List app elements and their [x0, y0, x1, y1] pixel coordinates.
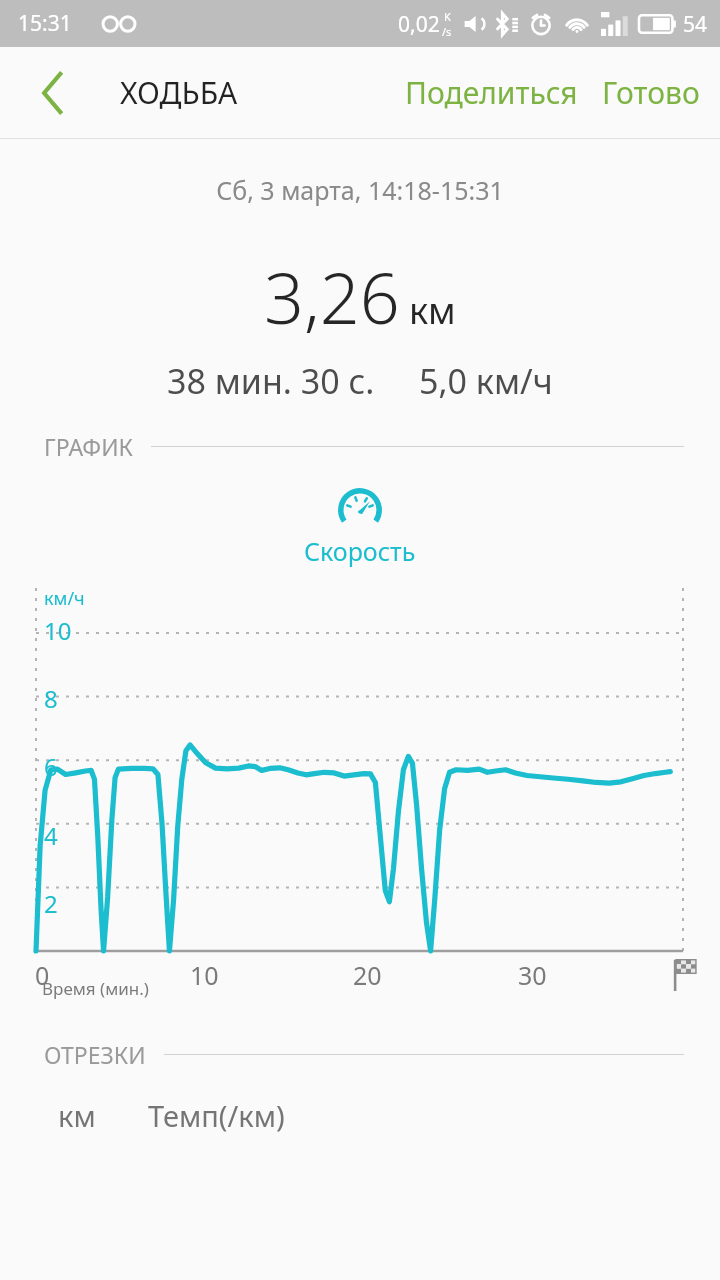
staticText: Темп(/км) — [148, 1096, 285, 1135]
staticText: 10 — [190, 958, 219, 992]
staticText: 0 — [35, 958, 50, 992]
staticText: 4 — [44, 819, 58, 852]
other: Скорость — [336, 484, 384, 526]
staticText: 30 — [518, 958, 547, 992]
staticText: 15:31 — [18, 9, 72, 38]
staticText: 0,02 — [398, 10, 440, 39]
staticText: ГРАФИК — [44, 431, 133, 462]
button[interactable]: Назад — [22, 62, 84, 124]
staticText: Время (мин.) — [42, 977, 149, 1000]
staticText: 10 — [44, 614, 72, 647]
staticText: 38 мин. 30 с. — [167, 358, 375, 404]
staticText: /s — [442, 24, 452, 39]
staticText: ОТРЕЗКИ — [44, 1039, 146, 1070]
staticText: 8 — [44, 682, 58, 715]
other: Финиш — [670, 957, 702, 991]
staticText: 3,26 — [264, 249, 400, 344]
staticText: 6 — [44, 750, 58, 783]
button[interactable]: Поделиться — [401, 62, 582, 123]
staticText: ХОДЬБА — [120, 72, 238, 113]
staticText: км — [58, 1096, 96, 1135]
staticText: 54 — [683, 10, 708, 39]
staticText: K — [444, 9, 451, 24]
staticText: Сб, 3 марта, 14:18-15:31 — [216, 173, 504, 207]
staticText: 5,0 км/ч — [419, 358, 553, 404]
staticText: Готово — [602, 72, 700, 113]
staticText: 2 — [44, 887, 58, 920]
staticText: Скорость — [304, 534, 416, 568]
button[interactable]: Готово — [598, 62, 704, 123]
staticText: 20 — [353, 958, 382, 992]
staticText: Поделиться — [405, 72, 578, 113]
button[interactable]: Скорость — [0, 484, 720, 568]
staticText: км — [409, 286, 456, 335]
staticText: км/ч — [44, 586, 85, 611]
